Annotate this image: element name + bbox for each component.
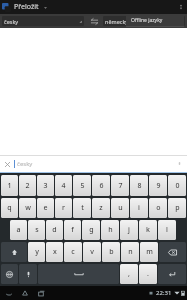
- button[interactable]: q: [1, 198, 18, 218]
- button[interactable]: v: [83, 242, 101, 262]
- staticText: 9: [156, 181, 161, 191]
- staticText: m: [146, 247, 153, 257]
- button[interactable]: j: [120, 220, 138, 240]
- staticText: b: [109, 247, 114, 257]
- button[interactable]: česky: [2, 16, 84, 26]
- button[interactable]: c: [64, 242, 82, 262]
- button[interactable]: Recent apps: [35, 287, 48, 300]
- button[interactable]: Shift: [1, 242, 27, 262]
- staticText: 8: [137, 181, 142, 191]
- button[interactable]: p: [168, 198, 186, 218]
- staticText: l: [166, 225, 168, 235]
- button[interactable]: Swap languages: [86, 14, 102, 28]
- button[interactable]: .: [139, 264, 157, 284]
- staticText: a: [16, 225, 21, 235]
- staticText: 7: [118, 181, 123, 191]
- staticText: y: [35, 247, 39, 257]
- staticText: z: [99, 203, 103, 213]
- staticText: w: [25, 203, 31, 213]
- button[interactable]: 6: [92, 175, 110, 196]
- button[interactable]: y: [28, 242, 45, 262]
- button[interactable]: 8: [130, 175, 148, 196]
- button[interactable]: Clear text: [0, 157, 14, 171]
- button[interactable]: 3: [37, 175, 54, 196]
- button[interactable]: t: [73, 198, 91, 218]
- button[interactable]: o: [149, 198, 167, 218]
- staticText: německy: [105, 18, 129, 25]
- button[interactable]: b: [102, 242, 120, 262]
- button[interactable]: 0: [168, 175, 186, 196]
- button[interactable]: Backspace: [159, 242, 186, 262]
- button[interactable]: r: [55, 198, 72, 218]
- staticText: .: [147, 269, 149, 279]
- button[interactable]: Change keyboard: [1, 264, 18, 284]
- button[interactable]: 4: [55, 175, 72, 196]
- button[interactable]: k: [139, 220, 157, 240]
- staticText: i: [138, 203, 140, 213]
- staticText: g: [89, 225, 94, 235]
- button[interactable]: 7: [111, 175, 129, 196]
- staticText: 1: [7, 181, 12, 191]
- staticText: o: [156, 203, 161, 213]
- button[interactable]: s: [28, 220, 45, 240]
- button[interactable]: Back: [3, 287, 15, 299]
- button[interactable]: ,: [120, 264, 138, 284]
- button[interactable]: m: [140, 242, 158, 262]
- button[interactable]: i: [130, 198, 148, 218]
- staticText: česky: [17, 160, 33, 168]
- button[interactable]: 2: [19, 175, 36, 196]
- staticText: d: [52, 225, 57, 235]
- button[interactable]: Odeslat názor: [126, 27, 184, 39]
- staticText: h: [108, 225, 113, 235]
- staticText: česky: [4, 18, 19, 25]
- staticText: c: [71, 247, 75, 257]
- button[interactable]: n: [121, 242, 139, 262]
- button[interactable]: w: [19, 198, 36, 218]
- staticText: f: [71, 225, 74, 235]
- button[interactable]: e: [37, 198, 54, 218]
- button[interactable]: x: [46, 242, 63, 262]
- staticText: u: [118, 203, 123, 213]
- button[interactable]: Voice input: [19, 264, 37, 284]
- button[interactable]: 1: [1, 175, 18, 196]
- button[interactable]: l: [158, 220, 176, 240]
- button[interactable]: Offline jazyky: [126, 14, 184, 26]
- button[interactable]: z: [92, 198, 110, 218]
- staticText: p: [175, 203, 180, 213]
- staticText: r: [62, 203, 65, 213]
- staticText: Offline jazyky: [131, 17, 163, 24]
- button[interactable]: f: [64, 220, 81, 240]
- staticText: j: [128, 225, 130, 235]
- staticText: 22:31: [156, 289, 172, 297]
- staticText: 3: [43, 181, 48, 191]
- staticText: n: [128, 247, 133, 257]
- staticText: ,: [128, 269, 130, 279]
- staticText: s: [35, 225, 39, 235]
- staticText: q: [7, 203, 12, 213]
- staticText: t: [81, 203, 84, 213]
- button[interactable]: německy: [103, 16, 185, 26]
- button[interactable]: More options: [175, 0, 187, 14]
- button[interactable]: 5: [73, 175, 91, 196]
- staticText: x: [53, 247, 57, 257]
- button[interactable]: u: [111, 198, 129, 218]
- staticText: 0: [175, 181, 180, 191]
- button[interactable]: d: [46, 220, 63, 240]
- staticText: k: [146, 225, 150, 235]
- button[interactable]: 9: [149, 175, 167, 196]
- button[interactable]: h: [101, 220, 119, 240]
- staticText: Přeložit: [14, 2, 39, 12]
- button[interactable]: Space: [38, 264, 119, 284]
- staticText: 5: [80, 181, 85, 191]
- button[interactable]: a: [10, 220, 27, 240]
- button[interactable]: Enter: [158, 264, 186, 284]
- button[interactable]: g: [82, 220, 100, 240]
- staticText: e: [43, 203, 48, 213]
- staticText: 6: [99, 181, 104, 191]
- button[interactable]: Voice input: [172, 157, 186, 171]
- button[interactable]: Home: [19, 287, 31, 299]
- staticText: v: [90, 247, 94, 257]
